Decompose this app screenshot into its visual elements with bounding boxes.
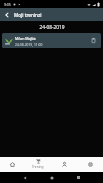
button[interactable]: Milan Majkic xyxy=(2,33,101,48)
button[interactable]: Settings xyxy=(77,157,103,172)
button[interactable]: Home xyxy=(0,157,25,172)
staticText: 24-08-2019, 11:00 xyxy=(15,42,43,46)
button[interactable]: Delete xyxy=(86,33,101,48)
button[interactable]: Back xyxy=(0,8,14,21)
staticText: Trening xyxy=(32,165,44,169)
button[interactable]: Trening xyxy=(25,157,51,172)
button[interactable]: Home xyxy=(38,172,65,183)
staticText: 24-08-2019 xyxy=(39,24,65,31)
staticText: 9:05 xyxy=(4,2,11,7)
staticText: Moji treninzi xyxy=(14,12,42,18)
staticText: Milan Majkic xyxy=(15,36,37,41)
button[interactable]: Profile xyxy=(51,157,77,172)
button[interactable]: Back xyxy=(11,172,38,183)
button[interactable]: Recents xyxy=(65,172,92,183)
